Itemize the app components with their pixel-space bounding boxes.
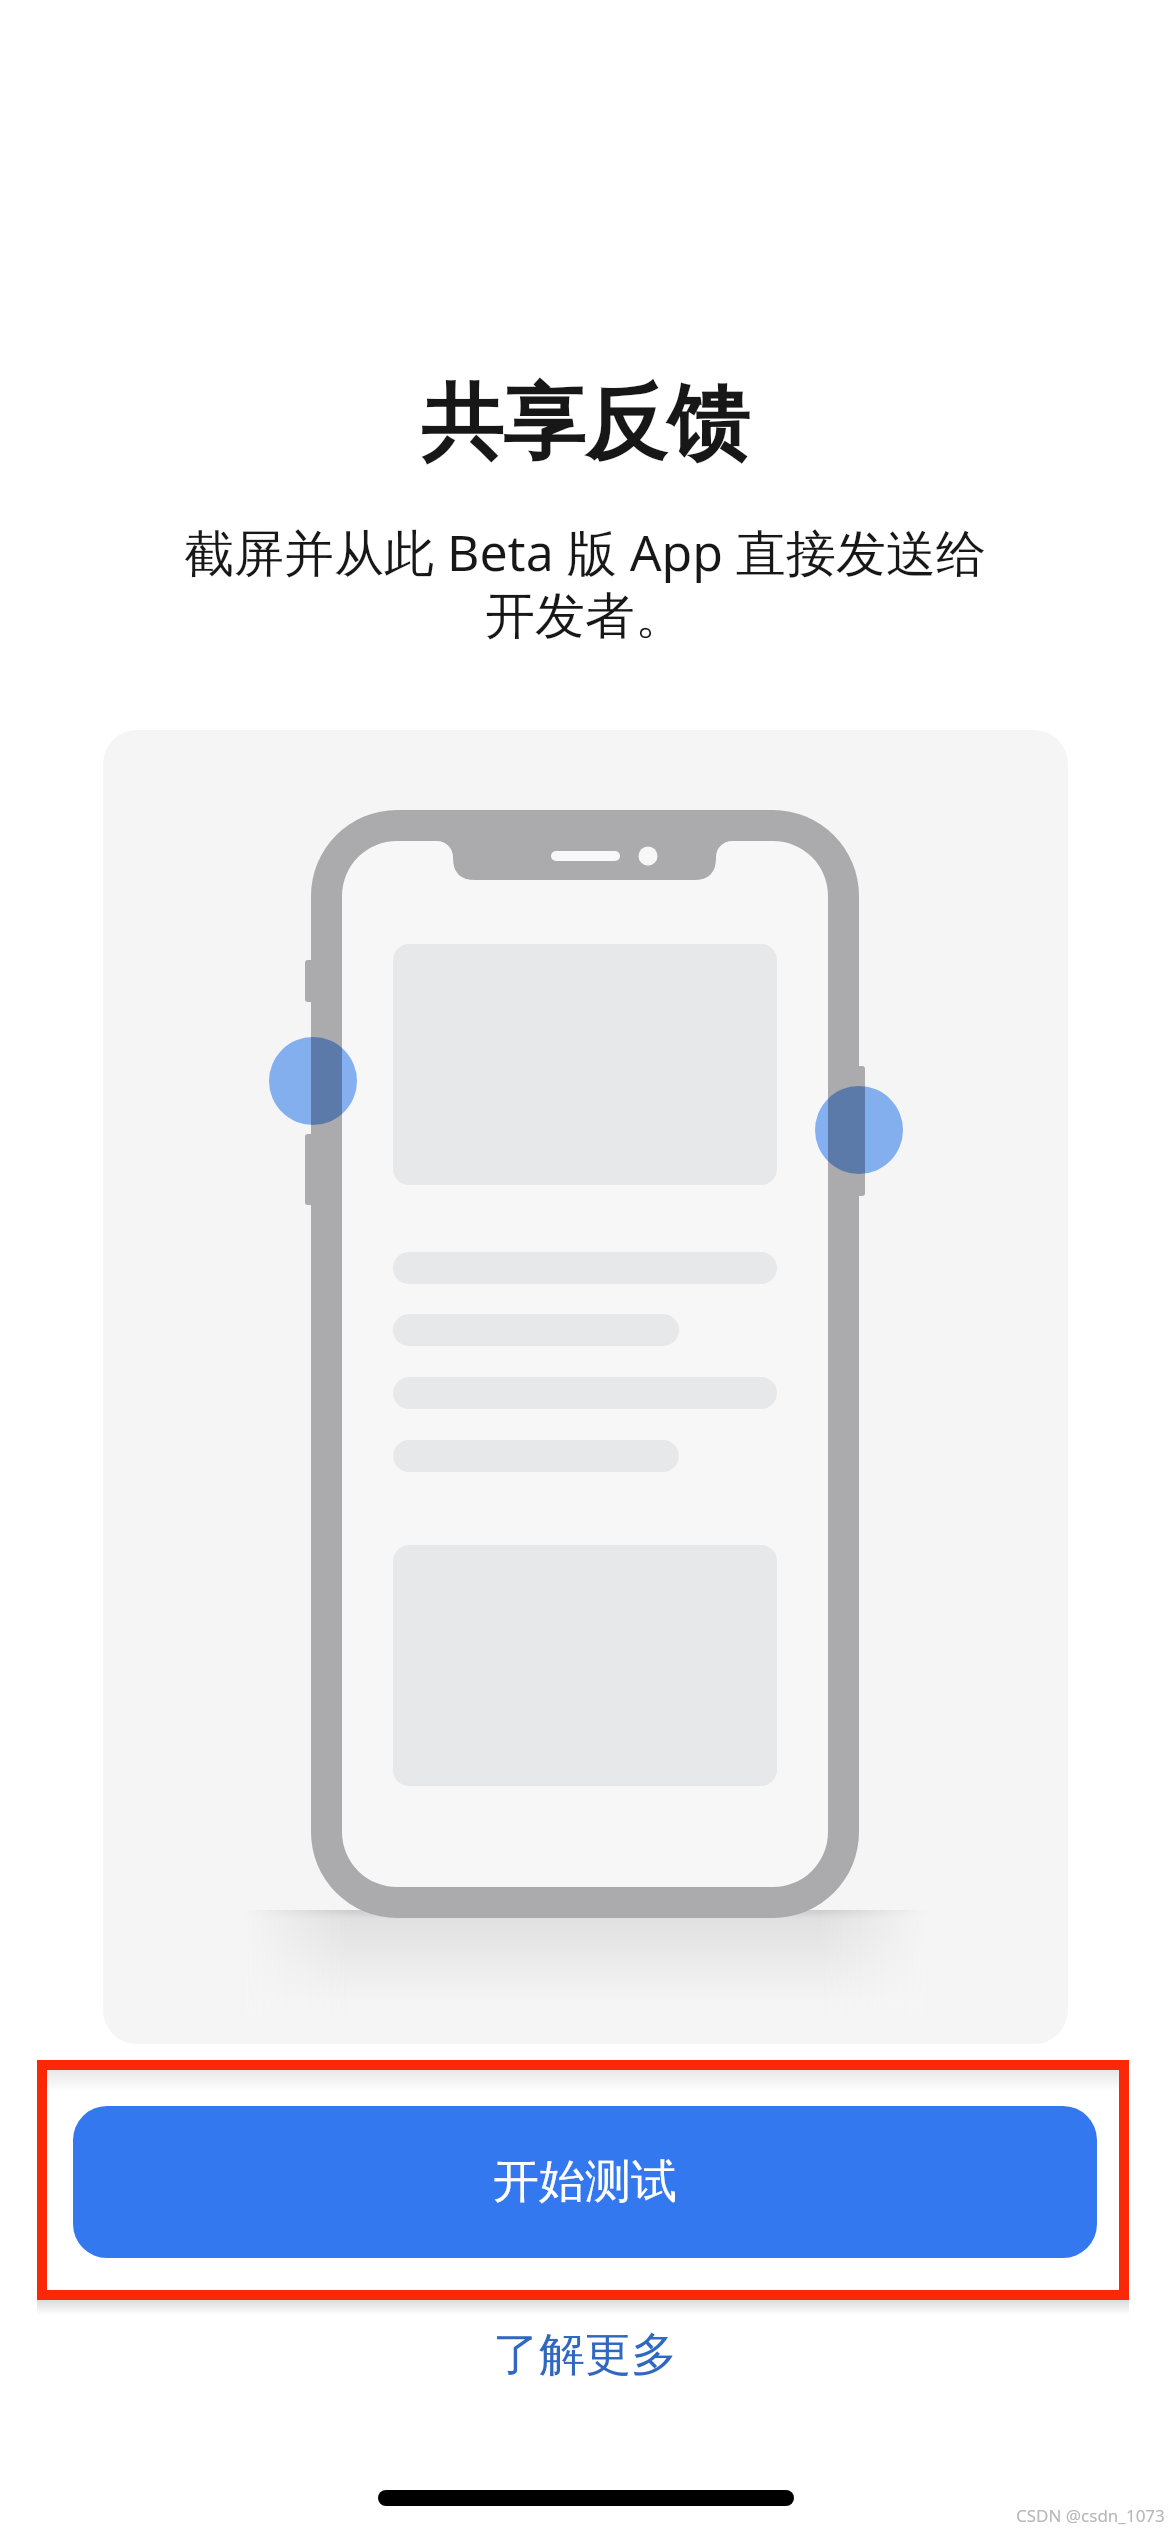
staticText: 截屏并从此 Beta 版 App 直接发送给开发者。 [180, 518, 990, 647]
button[interactable]: 了解更多 [0, 2320, 1170, 2390]
staticText: CSDN @csdn_1073 [1016, 2504, 1165, 2527]
staticText: 了解更多 [493, 2326, 677, 2384]
staticText: 共享反馈 [0, 372, 1170, 475]
staticText: 开始测试 [493, 2153, 677, 2211]
other: Home indicator [378, 2490, 794, 2506]
button[interactable]: 开始测试 [73, 2106, 1097, 2258]
